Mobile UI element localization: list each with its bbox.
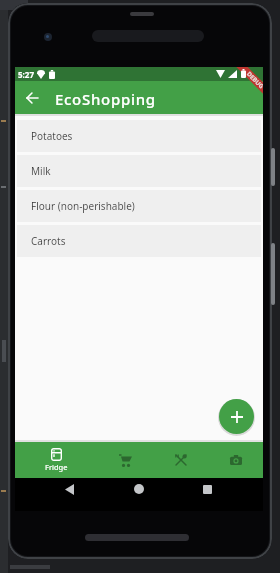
button[interactable]: [208, 442, 263, 478]
staticText: Milk: [31, 164, 51, 178]
button[interactable]: [219, 399, 254, 434]
button[interactable]: [203, 485, 212, 494]
staticText: EcoShopping: [55, 89, 156, 109]
button[interactable]: Milk: [17, 155, 261, 187]
staticText: Fridge: [45, 462, 68, 472]
button[interactable]: Flour (non-perishable): [17, 190, 261, 222]
staticText: Potatoes: [31, 129, 73, 143]
button[interactable]: Carrots: [17, 225, 261, 257]
staticText: Carrots: [31, 234, 66, 248]
button[interactable]: [153, 442, 208, 478]
staticText: 5:27: [18, 69, 34, 80]
staticText: Flour (non-perishable): [31, 199, 135, 213]
button[interactable]: [65, 484, 74, 495]
button[interactable]: [27, 93, 38, 103]
button[interactable]: Fridge: [15, 442, 98, 478]
staticText: DEBUG: [245, 70, 263, 91]
button[interactable]: [134, 484, 144, 494]
button[interactable]: [98, 442, 153, 478]
button[interactable]: Potatoes: [17, 120, 261, 152]
